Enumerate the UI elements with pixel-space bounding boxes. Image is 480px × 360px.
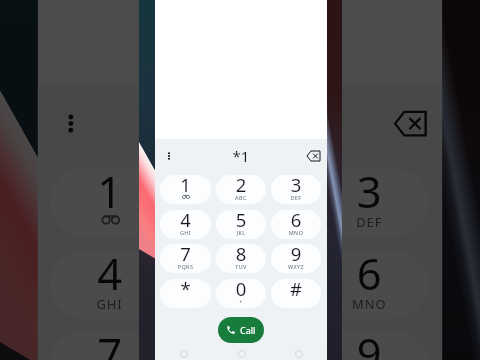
staticText: *1	[104, 100, 376, 147]
button[interactable]: 1	[50, 168, 169, 236]
staticText: *	[160, 279, 211, 301]
staticText: 7	[50, 330, 169, 360]
button[interactable]: 4	[50, 250, 169, 319]
staticText: GHI	[160, 229, 211, 236]
staticText: GHI	[50, 295, 169, 312]
button[interactable]: 7	[160, 244, 211, 273]
button[interactable]: Backspace	[376, 91, 442, 156]
button[interactable]: Favourites	[155, 347, 213, 360]
staticText: 5	[216, 210, 266, 232]
staticText: +	[216, 298, 266, 305]
staticText: #	[271, 279, 321, 301]
staticText: TUV	[216, 263, 266, 270]
button[interactable]: More options	[155, 142, 183, 170]
button[interactable]: 1	[160, 175, 211, 204]
staticText: PQRS	[160, 263, 211, 270]
staticText: 6	[271, 210, 321, 232]
staticText: *1	[183, 146, 299, 166]
button[interactable]: 9	[271, 244, 321, 273]
staticText: Call	[240, 324, 256, 336]
staticText: DEF	[271, 194, 321, 201]
button[interactable]: 9	[310, 330, 428, 360]
staticText: ABC	[181, 213, 299, 229]
staticText: 0	[216, 279, 266, 301]
button[interactable]: 2	[181, 168, 299, 236]
button[interactable]: 3	[310, 168, 428, 236]
button[interactable]: 4	[160, 210, 211, 239]
staticText: 1	[50, 168, 169, 220]
staticText: ABC	[216, 194, 266, 201]
button[interactable]: Call	[218, 317, 264, 343]
staticText: MNO	[271, 229, 321, 236]
staticText: 2	[181, 168, 299, 220]
button[interactable]: More options	[38, 91, 104, 156]
button[interactable]: *	[160, 279, 211, 308]
button[interactable]: 2	[216, 175, 266, 204]
button[interactable]: 7	[50, 330, 169, 360]
staticText: JKL	[181, 295, 299, 312]
button[interactable]: 6	[310, 250, 428, 319]
button[interactable]: 8	[181, 330, 299, 360]
button[interactable]: 6	[271, 210, 321, 239]
button[interactable]: #	[271, 279, 321, 308]
staticText: 9	[271, 244, 321, 266]
staticText: 5	[181, 250, 299, 302]
button[interactable]: Contacts	[270, 347, 327, 360]
staticText: 3	[271, 175, 321, 197]
button[interactable]: 3	[271, 175, 321, 204]
button[interactable]: Recents	[213, 347, 270, 360]
staticText: 1	[160, 175, 211, 197]
button[interactable]: Backspace	[299, 142, 327, 170]
staticText: DEF	[310, 213, 428, 229]
staticText: 8	[216, 244, 266, 266]
button[interactable]: 8	[216, 244, 266, 273]
staticText: 4	[50, 250, 169, 302]
staticText: MNO	[310, 295, 428, 312]
staticText: 7	[160, 244, 211, 266]
staticText: JKL	[216, 229, 266, 236]
button[interactable]: 5	[181, 250, 299, 319]
staticText: 8	[181, 330, 299, 360]
button[interactable]: 5	[216, 210, 266, 239]
staticText: WXYZ	[271, 263, 321, 270]
button[interactable]: 0	[216, 279, 266, 308]
staticText: 3	[310, 168, 428, 220]
staticText: 6	[310, 250, 428, 302]
staticText: 4	[160, 210, 211, 232]
staticText: 2	[216, 175, 266, 197]
staticText: 9	[310, 330, 428, 360]
